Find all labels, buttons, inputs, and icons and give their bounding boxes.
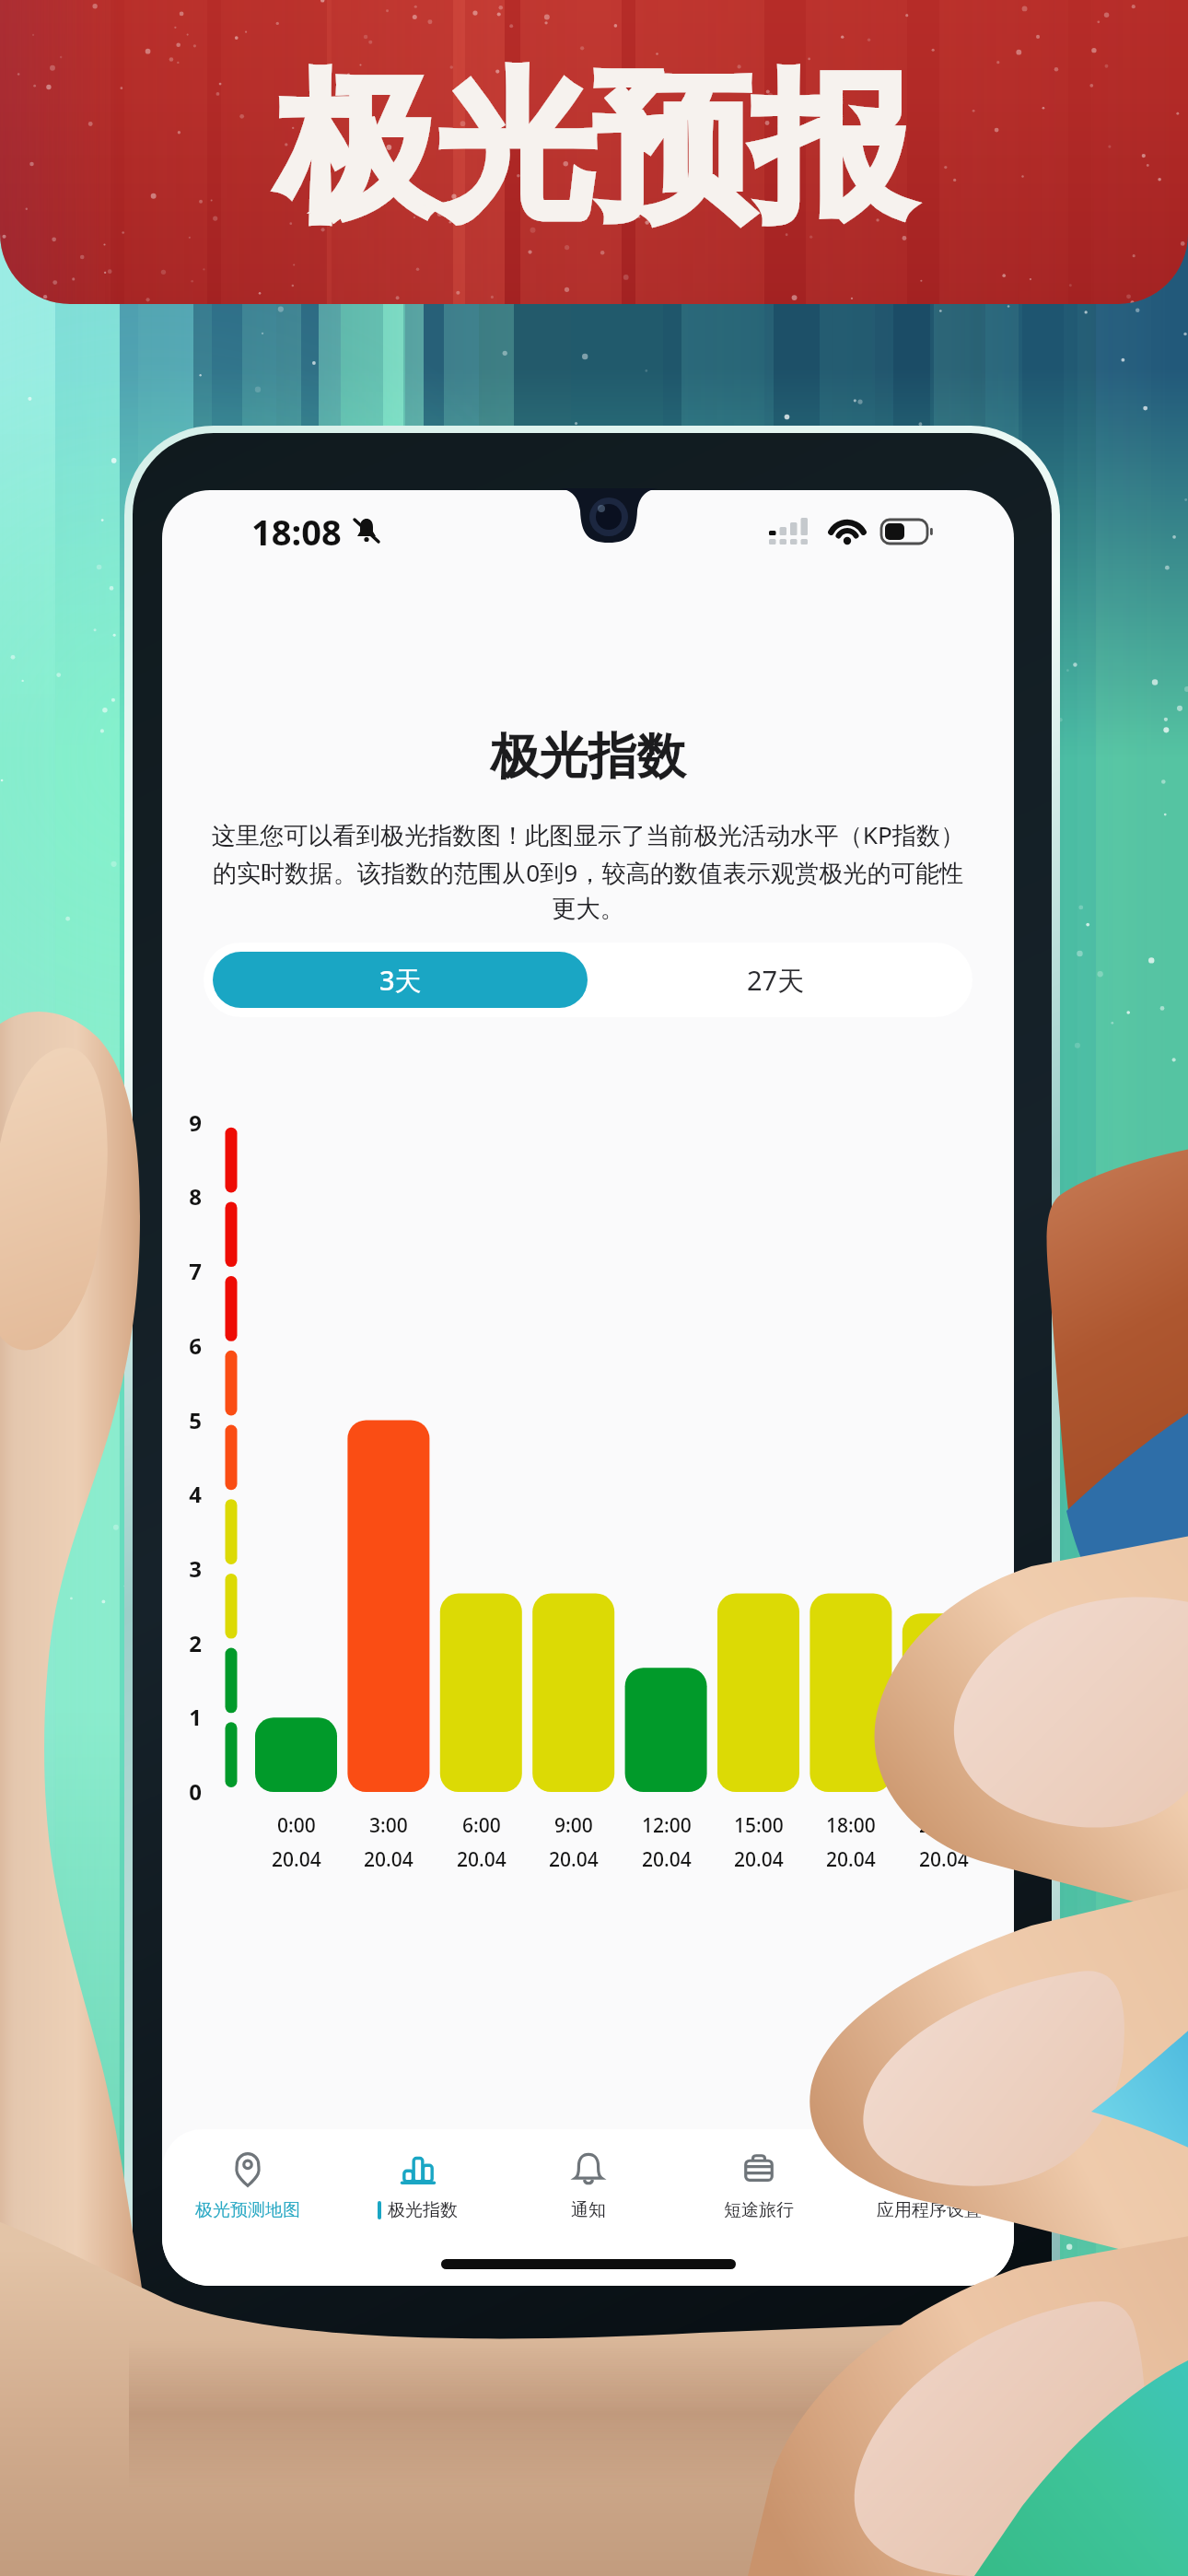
- staticText: 21:00: [919, 1812, 969, 1839]
- staticText: 极光预报: [277, 49, 911, 249]
- staticText: 1: [182, 1702, 208, 1732]
- staticText: 20.04: [826, 1846, 876, 1873]
- staticText: 通知: [571, 2199, 606, 2221]
- button[interactable]: 27天: [588, 952, 963, 1008]
- staticText: 20.04: [642, 1846, 692, 1873]
- staticText: 7: [182, 1256, 208, 1286]
- staticText: 0: [182, 1776, 208, 1807]
- staticText: 18:08: [251, 508, 342, 556]
- staticText: 3:00: [369, 1812, 408, 1839]
- staticText: 20.04: [549, 1846, 599, 1873]
- staticText: 6:00: [462, 1812, 501, 1839]
- button[interactable]: 3天: [213, 952, 588, 1008]
- button[interactable]: 极光指数: [332, 2129, 503, 2247]
- staticText: 极光指数: [162, 726, 1014, 788]
- staticText: 极光预测地图: [195, 2199, 300, 2221]
- staticText: 6: [182, 1330, 208, 1361]
- staticText: 15:00: [734, 1812, 784, 1839]
- staticText: 2: [182, 1628, 208, 1658]
- staticText: 27天: [747, 962, 805, 999]
- staticText: 应用程序设置: [877, 2199, 982, 2221]
- staticText: 12:00: [642, 1812, 692, 1839]
- staticText: 20.04: [919, 1846, 969, 1873]
- button[interactable]: 极光预测地图: [162, 2129, 332, 2247]
- staticText: 3: [182, 1553, 208, 1584]
- button[interactable]: 短途旅行: [673, 2129, 844, 2247]
- staticText: 这里您可以看到极光指数图！此图显示了当前极光活动水平（KP指数）的实时数据。该指…: [204, 818, 972, 924]
- staticText: 3天: [379, 962, 422, 999]
- staticText: 20.04: [457, 1846, 507, 1873]
- button[interactable]: 应用程序设置: [844, 2129, 1014, 2247]
- staticText: 20.04: [272, 1846, 321, 1873]
- button[interactable]: 通知: [503, 2129, 673, 2247]
- staticText: 20.04: [734, 1846, 784, 1873]
- staticText: 极光指数: [388, 2199, 458, 2221]
- staticText: 0:00: [277, 1812, 316, 1839]
- staticText: 4: [182, 1479, 208, 1509]
- staticText: 18:00: [826, 1812, 876, 1839]
- staticText: 9:00: [554, 1812, 593, 1839]
- staticText: 8: [182, 1181, 208, 1212]
- staticText: 20.04: [364, 1846, 413, 1873]
- staticText: 短途旅行: [724, 2199, 794, 2221]
- staticText: 5: [182, 1405, 208, 1435]
- staticText: 9: [182, 1107, 208, 1138]
